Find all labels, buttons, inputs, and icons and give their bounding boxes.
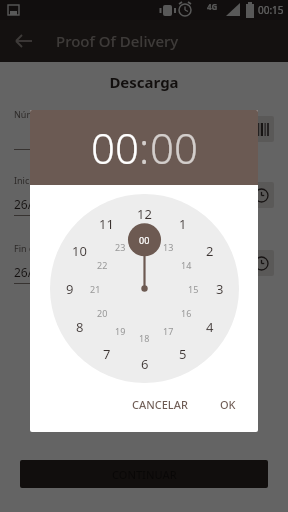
button[interactable]: OK [212,391,244,418]
button[interactable]: 00 [150,119,198,176]
button[interactable]: 19 [115,325,126,337]
button[interactable]: 10 [72,242,87,260]
staticText: 6 [141,355,149,373]
staticText: 21 [90,283,101,295]
button[interactable]: 12 [137,205,152,223]
staticText: 8 [76,318,84,336]
staticText: 14 [181,259,192,271]
staticText: 00 [139,234,150,246]
staticText: 10 [72,242,87,260]
button[interactable]: 5 [179,345,187,363]
staticText: 5 [179,345,187,363]
button[interactable]: 7 [103,345,111,363]
staticText: Proof Of Delivery [56,31,179,51]
staticText: 12 [137,205,152,223]
staticText: Inicio de descarga [14,174,91,186]
staticText: 16 [181,307,192,319]
staticText: 26/... [14,264,42,280]
button[interactable]: Pick time [248,182,274,208]
button[interactable]: Pick time [248,250,274,276]
staticText: 7 [103,345,111,363]
staticText: Fin de descarga [14,242,81,254]
staticText: 13 [163,241,174,253]
button[interactable]: 4 [206,318,214,336]
staticText: 4G [207,1,218,12]
staticText: 1 [179,215,187,233]
staticText: Descarga [0,72,288,92]
button[interactable]: 16 [181,307,192,319]
button[interactable]: 3 [216,280,224,298]
staticText: 9 [66,280,74,298]
button[interactable]: 6 [141,355,149,373]
button[interactable]: 20 [97,307,108,319]
button[interactable]: CANCELAR [124,391,196,418]
staticText: : [139,119,150,176]
button[interactable]: 17 [163,325,174,337]
staticText: 19 [115,325,126,337]
button[interactable]: 21 [90,283,101,295]
staticText: 20 [97,307,108,319]
button[interactable]: Back [8,26,38,56]
button[interactable]: Scan barcode [248,116,274,142]
staticText: 18 [139,332,150,344]
button[interactable]: 15 [188,283,199,295]
button[interactable]: 00 [91,119,139,176]
button[interactable]: 14 [181,259,192,271]
button[interactable]: 22 [97,259,108,271]
staticText: 26/... [14,196,42,212]
staticText: OK [220,397,236,412]
staticText: 23 [115,241,126,253]
staticText: 22 [97,259,108,271]
staticText: Número de albarán [14,108,97,120]
staticText: 15 [188,283,199,295]
button[interactable]: 1 [179,215,187,233]
button[interactable]: 2 [206,242,214,260]
button[interactable]: 23 [115,241,126,253]
staticText: 17 [163,325,174,337]
button[interactable]: 9 [66,280,74,298]
staticText: CANCELAR [132,397,188,412]
button[interactable]: 13 [163,241,174,253]
staticText: 4 [206,318,214,336]
button[interactable]: 11 [99,215,114,233]
staticText: 11 [99,215,114,233]
staticText: 3 [216,280,224,298]
staticText: 00:15 [258,3,284,17]
button[interactable]: 18 [139,332,150,344]
staticText: 2 [206,242,214,260]
button[interactable]: 8 [76,318,84,336]
button[interactable]: 00 [139,234,150,246]
